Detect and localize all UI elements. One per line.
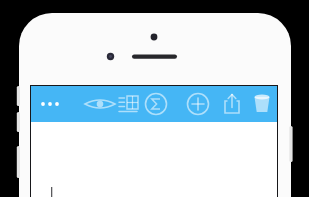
button[interactable]: Delete [247, 89, 277, 119]
button[interactable]: Add [183, 89, 213, 119]
button[interactable]: More options [35, 89, 65, 119]
button[interactable]: Preview [85, 89, 115, 119]
button[interactable]: Summary [141, 89, 171, 119]
button[interactable]: Table view [113, 89, 143, 119]
button[interactable]: Share [217, 89, 247, 119]
